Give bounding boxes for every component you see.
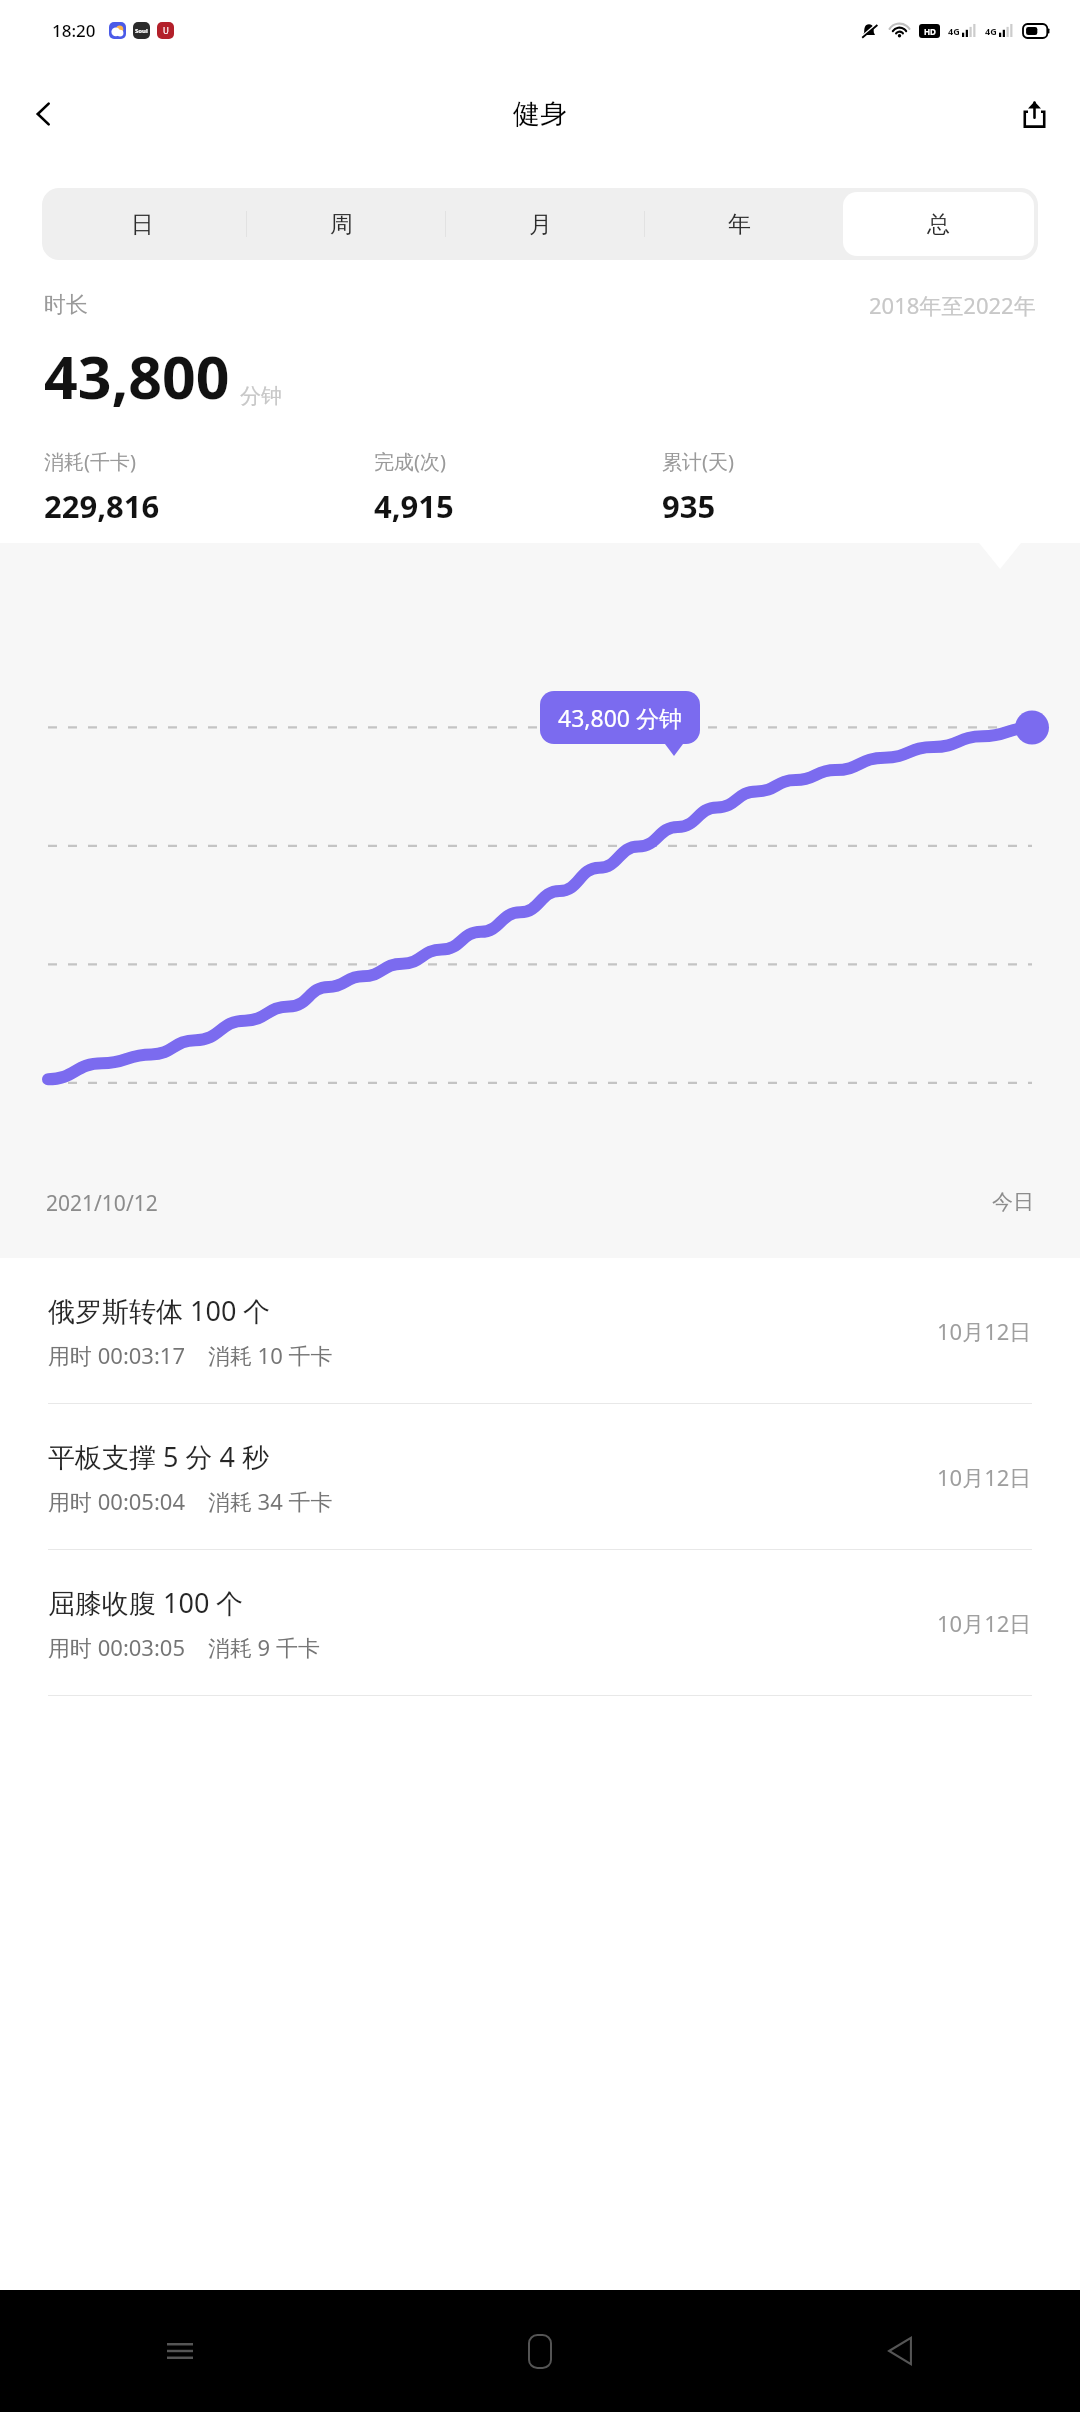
- button[interactable]: Back: [720, 2290, 1080, 2412]
- staticText: 完成(次): [374, 448, 446, 475]
- staticText: 俄罗斯转体 100 个: [48, 1292, 271, 1329]
- staticText: 4G: [985, 25, 997, 37]
- staticText: 日: [131, 210, 154, 239]
- staticText: 分钟: [240, 383, 282, 409]
- button[interactable]: 俄罗斯转体 100 个: [0, 1258, 1080, 1403]
- staticText: 今日: [992, 1189, 1034, 1215]
- button[interactable]: 周: [246, 192, 437, 256]
- staticText: 43,800 分钟: [558, 702, 682, 733]
- button[interactable]: 屈膝收腹 100 个: [0, 1550, 1080, 1695]
- staticText: 2018年至2022年: [869, 290, 1036, 320]
- staticText: 用时 00:03:17 消耗 10 千卡: [48, 1340, 333, 1370]
- staticText: 月: [529, 210, 552, 239]
- staticText: 4,915: [374, 485, 454, 527]
- button[interactable]: Back: [16, 86, 72, 142]
- button[interactable]: 年: [644, 192, 835, 256]
- staticText: 10月12日: [937, 1462, 1032, 1492]
- staticText: 用时 00:05:04 消耗 34 千卡: [48, 1486, 333, 1516]
- staticText: 229,816: [44, 485, 160, 527]
- button[interactable]: Share: [1006, 86, 1062, 142]
- staticText: 屈膝收腹 100 个: [48, 1584, 244, 1621]
- staticText: 年: [728, 210, 751, 239]
- staticText: U: [163, 25, 169, 36]
- staticText: HD: [924, 26, 936, 37]
- staticText: 10月12日: [937, 1316, 1032, 1346]
- staticText: 消耗(千卡): [44, 448, 136, 475]
- button[interactable]: Home: [360, 2290, 720, 2412]
- button[interactable]: 日: [46, 192, 238, 256]
- button[interactable]: 月: [445, 192, 636, 256]
- staticText: 周: [330, 210, 353, 239]
- staticText: 4G: [948, 25, 960, 37]
- staticText: 总: [927, 210, 950, 239]
- staticText: 健身: [513, 97, 567, 131]
- button[interactable]: 平板支撑 5 分 4 秒: [0, 1404, 1080, 1549]
- staticText: 935: [662, 485, 716, 527]
- staticText: 10月12日: [937, 1608, 1032, 1638]
- staticText: 平板支撑 5 分 4 秒: [48, 1438, 269, 1475]
- staticText: 18:20: [52, 19, 96, 42]
- staticText: 2021/10/12: [46, 1189, 158, 1218]
- staticText: Soul: [135, 27, 148, 35]
- button[interactable]: 总: [843, 192, 1034, 256]
- staticText: 时长: [44, 291, 88, 319]
- button[interactable]: Recents: [0, 2290, 360, 2412]
- staticText: 用时 00:03:05 消耗 9 千卡: [48, 1632, 320, 1662]
- staticText: 43,800: [44, 336, 230, 416]
- staticText: 累计(天): [662, 448, 734, 475]
